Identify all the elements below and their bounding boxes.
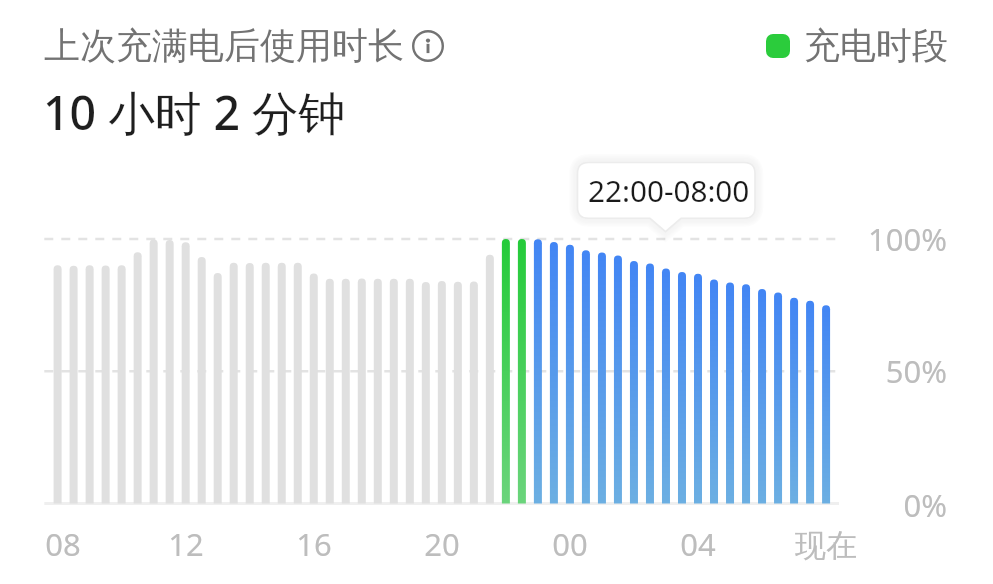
staticText: 充电时段 (804, 23, 948, 68)
staticText: 现在 (776, 526, 876, 565)
button[interactable]: More information (412, 30, 444, 62)
staticText: 16 (264, 523, 364, 565)
staticText: 100% (847, 218, 947, 260)
staticText: 10 小时 2 分钟 (43, 80, 346, 144)
staticText: 20 (392, 523, 492, 565)
button[interactable]: 充电时段 (766, 23, 948, 68)
staticText: 08 (13, 523, 113, 565)
staticText: 04 (648, 523, 748, 565)
staticText: 00 (520, 523, 620, 565)
staticText: 0% (847, 484, 947, 526)
button[interactable]: Charging period 22:00-08:00 (578, 163, 756, 219)
staticText: 上次充满电后使用时长 (44, 23, 404, 68)
button[interactable]: 上次充满电后使用时长 (44, 23, 444, 68)
staticText: 22:00-08:00 (588, 170, 750, 210)
staticText: 12 (136, 523, 236, 565)
staticText: 50% (847, 350, 947, 392)
